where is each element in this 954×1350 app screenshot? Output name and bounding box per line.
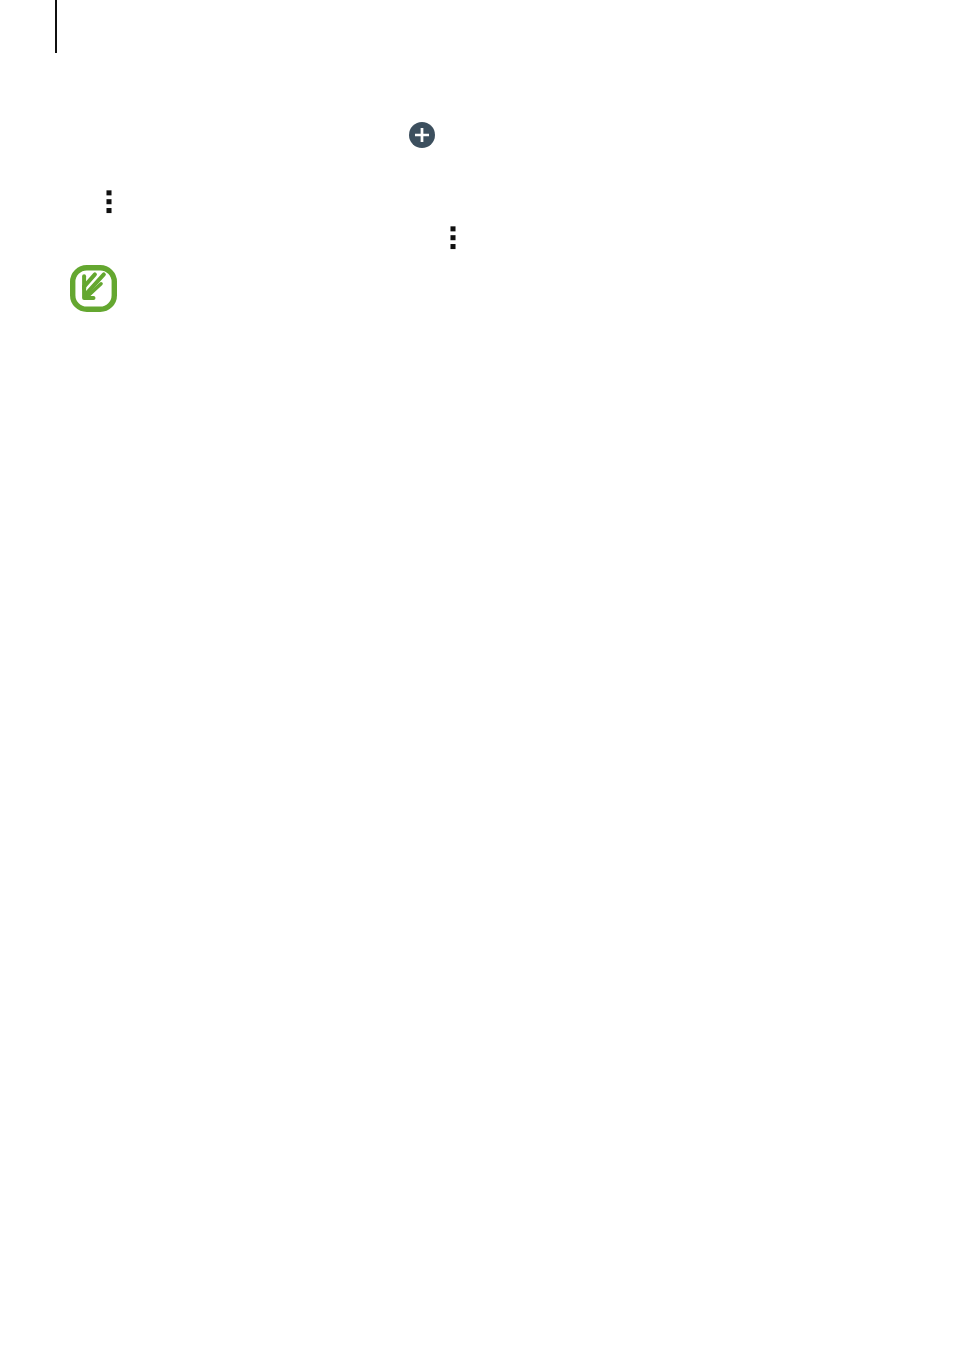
button[interactable]: More options (103, 187, 115, 216)
button[interactable]: Add (409, 122, 435, 148)
button[interactable]: More options (447, 223, 459, 252)
button[interactable]: Notes app (70, 265, 117, 312)
